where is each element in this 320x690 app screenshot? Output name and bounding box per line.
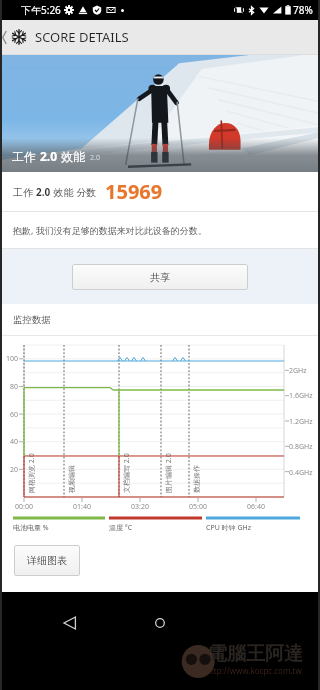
staticText: CPU 时钟 GHz xyxy=(206,523,251,533)
staticText: 共享 xyxy=(150,271,170,284)
staticText: 電腦王阿達 xyxy=(208,642,303,666)
staticText: 网格浏览 2.0 xyxy=(27,453,36,493)
staticText: 下午5:26 xyxy=(21,3,61,17)
staticText: 01:40 xyxy=(73,502,91,512)
staticText: 05:00 xyxy=(189,502,207,512)
staticText: 电池电量 % xyxy=(13,523,49,533)
staticText: 03:20 xyxy=(131,502,149,512)
staticText: 详细图表 xyxy=(27,554,67,567)
staticText: http://www.kocpc.com.tw xyxy=(206,665,302,676)
staticText: 15969 xyxy=(105,178,163,205)
staticText: 60 xyxy=(10,410,19,420)
staticText: 0.4GHz xyxy=(289,468,313,478)
staticText: SCORE DETAILS xyxy=(35,28,129,46)
staticText: 1.6GHz xyxy=(289,391,313,401)
staticText: 00:00 xyxy=(15,502,33,512)
staticText: 工作 xyxy=(13,185,36,199)
staticText: 温度 °C xyxy=(109,523,133,533)
staticText: 效能 xyxy=(58,148,86,164)
staticText: 2.0 xyxy=(40,148,58,164)
staticText: 2.0 xyxy=(90,153,100,163)
staticText: 图片编辑 2.0 xyxy=(164,453,173,493)
button[interactable]: 共享 xyxy=(72,264,248,290)
staticText: 1.2GHz xyxy=(289,417,313,427)
button[interactable]: Home xyxy=(140,603,180,643)
staticText: 工作 xyxy=(12,148,40,164)
staticText: 40 xyxy=(10,437,19,447)
staticText: 抱歉, 我们没有足够的数据来对比此设备的分数。 xyxy=(13,224,207,236)
staticText: 80 xyxy=(10,382,19,392)
staticText: 2GHz xyxy=(289,366,307,376)
button[interactable]: Back xyxy=(50,603,90,643)
staticText: 效能 分数 xyxy=(51,185,97,199)
staticText: 0.8GHz xyxy=(289,442,313,452)
button[interactable]: 详细图表 xyxy=(14,545,80,576)
staticText: 78% xyxy=(293,3,313,17)
staticText: 20 xyxy=(10,465,19,475)
staticText: 文档编写 2.0 xyxy=(122,453,131,493)
staticText: 数据操作 xyxy=(192,465,201,493)
staticText: 2.0 xyxy=(36,185,51,199)
button[interactable]: Back xyxy=(0,20,9,54)
staticText: 100 xyxy=(6,354,19,364)
staticText: 监控数据 xyxy=(13,314,51,326)
staticText: 视频编辑 xyxy=(67,465,76,493)
staticText: 06:40 xyxy=(247,502,265,512)
